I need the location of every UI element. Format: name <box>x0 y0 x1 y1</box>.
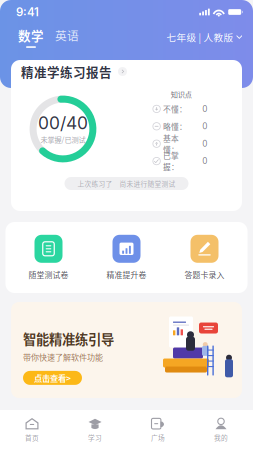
staticText: 00/40 <box>38 113 88 134</box>
button[interactable]: 学习 <box>63 410 126 450</box>
button[interactable]: 上次练习了 <box>64 177 188 190</box>
button[interactable]: 精准学练习报告 <box>11 60 242 83</box>
staticText: 略懂： <box>163 121 187 132</box>
staticText: 上次练习了 <box>77 179 112 188</box>
button[interactable]: 数学 <box>16 25 46 49</box>
button[interactable]: 首页 <box>0 410 63 450</box>
staticText: 不懂： <box>163 103 187 114</box>
button[interactable]: 广场 <box>126 410 189 450</box>
staticText: 智能精准练引导 <box>23 329 114 348</box>
button[interactable]: 七年级 | 人教版 <box>167 25 242 49</box>
staticText: 0 <box>202 121 207 131</box>
staticText: 点击查看> <box>34 372 71 384</box>
staticText: 答题卡录入 <box>184 269 224 280</box>
staticText: 0 <box>202 156 207 166</box>
staticText: 首页 <box>25 433 39 442</box>
staticText: 未掌握/已测试 <box>40 134 85 144</box>
staticText: 学习 <box>88 433 102 442</box>
staticText: 带你快速了解软件功能 <box>23 351 103 363</box>
button[interactable]: 我的 <box>189 410 252 450</box>
staticText: 英语 <box>55 27 79 44</box>
staticText: 精准提升卷 <box>106 269 146 280</box>
staticText: 数学 <box>18 26 44 44</box>
button[interactable]: 英语 <box>52 25 82 49</box>
button[interactable]: 智能精准练引导 <box>11 302 242 398</box>
staticText: 知识点 <box>171 89 192 99</box>
staticText: 精准学练习报告 <box>21 62 112 80</box>
button[interactable]: 精准提升卷 <box>91 227 161 287</box>
staticText: 已掌握： <box>163 150 179 172</box>
staticText: 随堂测试卷 <box>28 269 68 280</box>
staticText: 尚未进行随堂测试 <box>119 179 175 188</box>
staticText: 七年级 | 人教版 <box>167 30 234 44</box>
button[interactable]: 随堂测试卷 <box>13 227 83 287</box>
staticText: 我的 <box>214 433 228 442</box>
staticText: 9:41 <box>16 5 39 19</box>
staticText: 0 <box>202 139 207 149</box>
staticText: 广场 <box>151 433 165 442</box>
button[interactable]: 答题卡录入 <box>169 227 239 287</box>
staticText: 基本懂： <box>163 132 179 155</box>
staticText: 0 <box>202 104 207 114</box>
button[interactable]: 点击查看> <box>23 371 82 385</box>
